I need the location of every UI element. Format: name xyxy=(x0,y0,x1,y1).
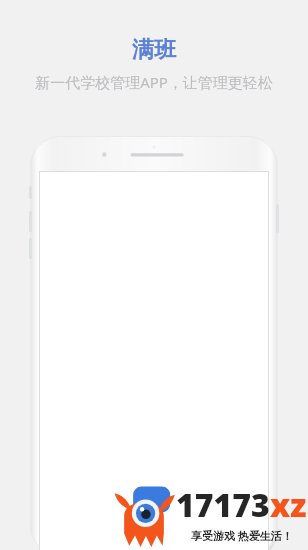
staticText: 满班 xyxy=(132,36,176,64)
staticText: 新一代学校管理APP，让管理更轻松 xyxy=(35,72,273,92)
staticText: 享受游戏 热爱生活！ xyxy=(191,528,293,543)
button[interactable]: 17173xz logo xyxy=(112,477,307,549)
staticText: 17173 xyxy=(176,483,270,527)
staticText: xz xyxy=(270,483,307,527)
